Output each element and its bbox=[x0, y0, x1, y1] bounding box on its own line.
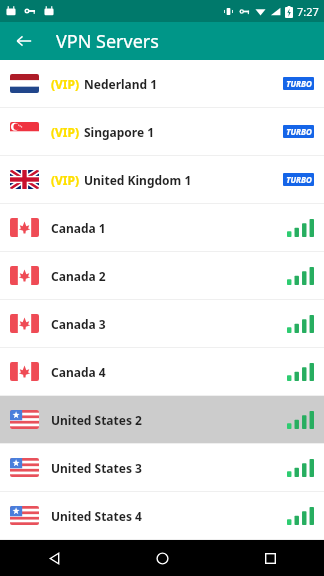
button[interactable]: United States 4 bbox=[0, 492, 324, 539]
button[interactable]: Recents bbox=[216, 540, 324, 576]
staticText: TURBO bbox=[286, 174, 312, 185]
button[interactable]: Back bbox=[8, 25, 40, 57]
staticText: Nederland 1 bbox=[84, 76, 158, 92]
staticText: (VIP) bbox=[51, 76, 80, 92]
staticText: 7:27 bbox=[297, 4, 319, 19]
button[interactable]: Canada 1 bbox=[0, 204, 324, 251]
staticText: TURBO bbox=[286, 126, 312, 137]
button[interactable]: United States 3 bbox=[0, 444, 324, 491]
staticText: (VIP) bbox=[51, 124, 80, 140]
button[interactable]: Back bbox=[0, 540, 108, 576]
staticText: Canada 4 bbox=[51, 364, 106, 380]
staticText: Canada 1 bbox=[51, 220, 106, 236]
staticText: Canada 3 bbox=[51, 316, 106, 332]
staticText: VPN Servers bbox=[56, 29, 159, 54]
button[interactable]: (VIP) bbox=[0, 60, 324, 107]
button[interactable]: Canada 3 bbox=[0, 300, 324, 347]
staticText: United States 2 bbox=[51, 412, 142, 428]
button[interactable]: United States 2 bbox=[0, 396, 324, 443]
staticText: United States 3 bbox=[51, 460, 142, 476]
staticText: Canada 2 bbox=[51, 268, 106, 284]
staticText: Singapore 1 bbox=[84, 124, 155, 140]
staticText: (VIP) bbox=[51, 172, 80, 188]
button[interactable]: (VIP) bbox=[0, 108, 324, 155]
button[interactable]: (VIP) bbox=[0, 156, 324, 203]
staticText: TURBO bbox=[286, 78, 312, 89]
button[interactable]: Canada 4 bbox=[0, 348, 324, 395]
staticText: United States 4 bbox=[51, 508, 142, 524]
button[interactable]: Canada 2 bbox=[0, 252, 324, 299]
button[interactable]: Home bbox=[108, 540, 216, 576]
staticText: United Kingdom 1 bbox=[84, 172, 192, 188]
